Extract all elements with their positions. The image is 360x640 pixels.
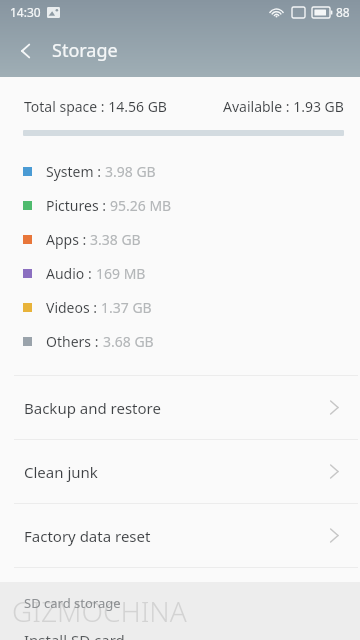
staticText: Pictures : [46,196,110,215]
staticText: 3.98 GB [105,162,156,181]
staticText: System : [46,162,105,181]
staticText: Audio : [46,264,96,283]
staticText: 3.38 GB [90,230,141,249]
staticText: SD card storage [24,594,121,612]
staticText: GIZMOCHINA [12,592,187,630]
staticText: 88 [336,4,350,20]
staticText: Others : [46,332,103,351]
button[interactable]: Clean junk [0,440,360,503]
staticText: Factory data reset [24,526,151,546]
button[interactable]: Factory data reset [0,504,360,567]
staticText: Clean junk [24,462,98,482]
staticText: 95.26 MB [110,196,172,215]
staticText: Storage [52,38,118,63]
staticText: Install SD card [24,630,125,640]
staticText: Apps : [46,230,90,249]
staticText: 1.37 GB [101,298,152,317]
staticText: 169 MB [96,264,146,283]
staticText: Total space : 14.56 GB [24,97,167,116]
staticText: 14:30 [10,4,41,20]
staticText: Available : 1.93 GB [223,97,344,116]
staticText: Backup and restore [24,398,161,418]
staticText: Videos : [46,298,101,317]
staticText: 3.68 GB [103,332,154,351]
button[interactable]: Backup and restore [0,376,360,439]
button[interactable]: Back [0,24,52,77]
